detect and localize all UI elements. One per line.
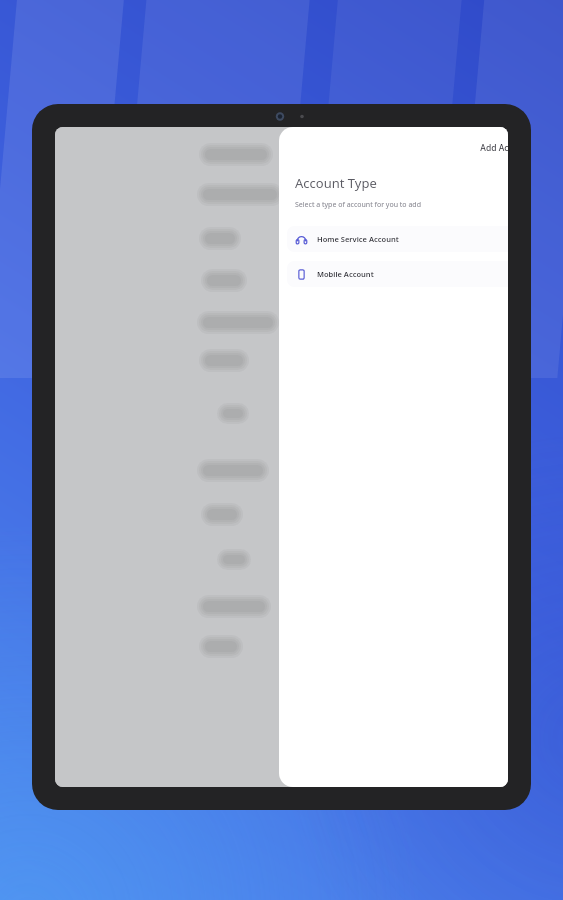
staticText: Account Type bbox=[295, 174, 377, 192]
staticText: Add Account bbox=[480, 142, 508, 154]
staticText: Home Service Account bbox=[317, 234, 399, 244]
button[interactable]: Home Service Account bbox=[287, 226, 508, 252]
button[interactable]: Mobile Account bbox=[287, 261, 508, 287]
staticText: Mobile Account bbox=[317, 269, 374, 279]
staticText: Select a type of account for you to add bbox=[295, 200, 421, 210]
